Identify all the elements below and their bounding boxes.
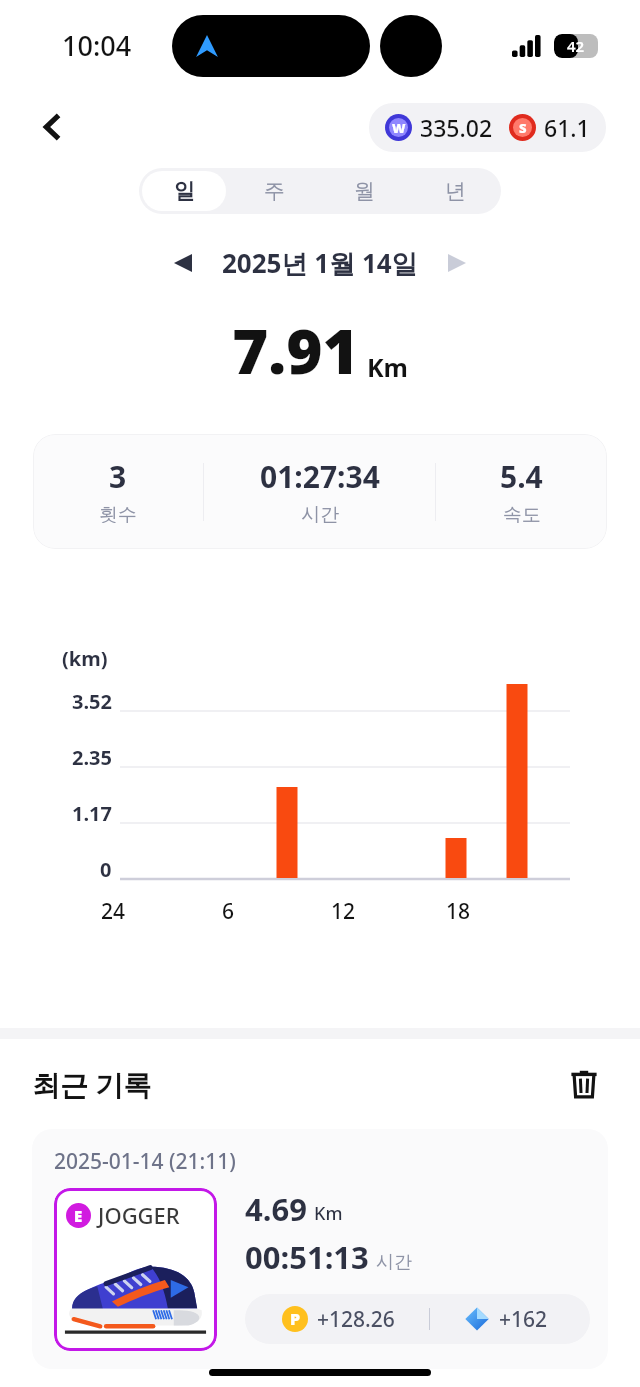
staticText: 0 [100,856,112,883]
button[interactable]: 월 [322,171,407,211]
button[interactable]: Previous day [160,240,206,286]
staticText: W [392,119,406,137]
staticText: 3.52 [72,688,112,715]
staticText: (km) [62,645,108,672]
staticText: 5.4 [500,456,543,497]
button[interactable]: 5.4 [436,434,607,549]
button[interactable]: 일 [142,171,226,211]
staticText: 00:51:13 [245,1236,369,1278]
staticText: Km [314,1201,343,1226]
button[interactable]: 01:27:34 [204,434,435,549]
staticText: Km [367,350,408,384]
staticText: +162 [499,1305,548,1334]
staticText: JOGGER [98,1200,180,1230]
staticText: 2.35 [72,744,112,771]
staticText: 42 [567,36,585,56]
staticText: 12 [331,897,356,926]
staticText: +128.26 [317,1305,395,1334]
staticText: E [74,1206,83,1226]
staticText: 월 [354,178,375,204]
staticText: 61.1 [544,112,590,143]
button[interactable]: P [245,1294,590,1344]
staticText: 시간 [301,503,339,527]
staticText: 7.91 [232,308,359,392]
staticText: 335.02 [420,112,493,143]
staticText: 10:04 [62,27,132,64]
staticText: 1.17 [72,800,112,827]
staticText: 2025년 1월 14일 [222,245,418,281]
staticText: 시간 [376,1251,412,1274]
staticText: P [290,1308,301,1330]
staticText: S [519,119,527,137]
staticText: 주 [264,178,285,204]
button[interactable]: Back [28,103,76,151]
staticText: 년 [445,178,466,204]
button[interactable]: JOGGER shoe [54,1188,217,1351]
staticText: 18 [446,897,471,926]
staticText: 일 [174,178,195,204]
staticText: 24 [101,897,126,926]
button[interactable]: W [369,103,606,152]
staticText: 최근 기록 [32,1065,152,1103]
button[interactable]: Next day [434,240,480,286]
button[interactable]: 주 [232,171,316,211]
staticText: 횟수 [99,503,137,527]
staticText: 6 [222,897,235,926]
staticText: 4.69 [245,1188,307,1230]
staticText: 3 [109,456,127,497]
button[interactable]: 3 [33,434,203,549]
button[interactable]: 년 [413,171,498,211]
staticText: 01:27:34 [260,456,380,497]
staticText: 속도 [503,503,541,527]
staticText: 2025-01-14 (21:11) [54,1147,236,1176]
button[interactable]: Delete records [560,1060,608,1108]
button[interactable]: 2025-01-14 (21:11) [32,1129,608,1369]
